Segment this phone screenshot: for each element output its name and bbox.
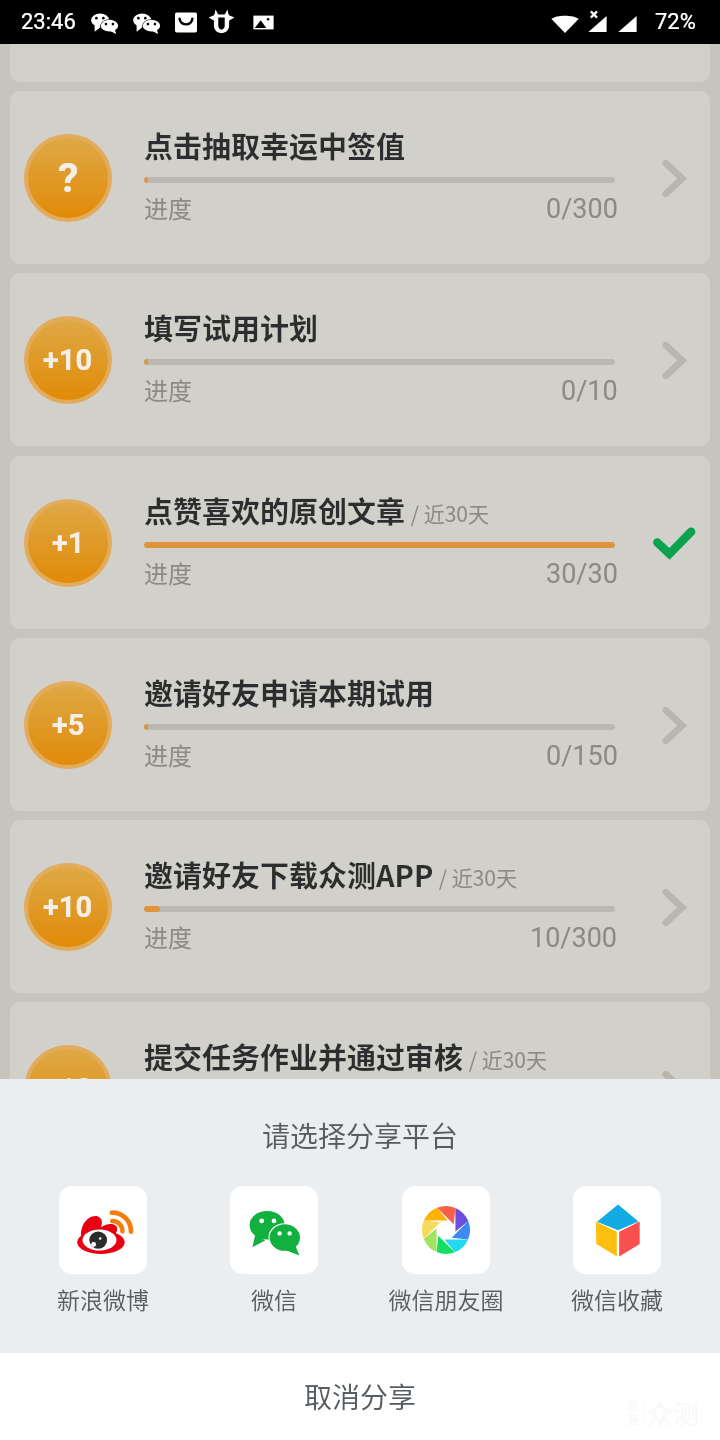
staticText: 邀请好友申请本期试用 <box>144 671 435 713</box>
button[interactable]: 微信朋友圈 <box>356 1186 536 1274</box>
button[interactable]: 微信 <box>184 1186 364 1274</box>
staticText: 0/300 <box>546 193 618 225</box>
staticText: 进度 <box>144 555 192 590</box>
staticText: +10 <box>43 343 93 377</box>
staticText: / 近30天 <box>434 862 517 892</box>
other: 查看详情 <box>645 331 703 389</box>
button[interactable]: +10 <box>10 820 710 993</box>
staticText: 72% <box>655 9 696 35</box>
other: 已完成 <box>645 514 703 572</box>
staticText: 30/30 <box>546 558 618 590</box>
staticText: +10 <box>43 1072 93 1106</box>
other: 查看详情 <box>645 149 703 207</box>
button[interactable]: +10 <box>10 1002 710 1175</box>
staticText: 微信收藏 <box>527 1282 707 1315</box>
staticText: 进度 <box>144 737 192 772</box>
staticText: 进度 <box>144 372 192 407</box>
button[interactable]: ? <box>10 91 710 264</box>
staticText: 微信 <box>184 1282 364 1315</box>
staticText: +10 <box>43 890 93 924</box>
staticText: 进度 <box>144 919 192 954</box>
other: 查看详情 <box>645 696 703 754</box>
staticText: 新浪微博 <box>13 1282 193 1315</box>
staticText: +5 <box>52 708 85 742</box>
staticText: 填写试用计划 <box>144 306 319 348</box>
button[interactable]: 新浪微博 <box>13 1186 193 1274</box>
staticText: 0/10 <box>561 375 618 407</box>
staticText: 微信朋友圈 <box>356 1282 536 1315</box>
button[interactable]: 取消分享 <box>0 1353 720 1440</box>
button[interactable]: +5 <box>10 638 710 811</box>
staticText: 10/300 <box>530 922 618 954</box>
staticText: 取消分享 <box>304 1376 417 1417</box>
staticText: 进度 <box>144 190 192 225</box>
other: 查看详情 <box>645 878 703 936</box>
staticText: 点击抽取幸运中签值 <box>144 124 406 166</box>
staticText: / 近30天 <box>406 498 489 528</box>
staticText: 0/150 <box>546 740 618 772</box>
staticText: 请选择分享平台 <box>0 1115 720 1156</box>
staticText: / 近30天 <box>464 1044 547 1074</box>
staticText: 点赞喜欢的原创文章 <box>144 489 406 531</box>
staticText: 23:46 <box>21 9 76 35</box>
staticText: ? <box>58 154 79 202</box>
staticText: +1 <box>52 526 85 560</box>
button[interactable]: +1 <box>10 456 710 629</box>
staticText: 邀请好友下载众测APP <box>144 853 434 895</box>
button[interactable]: 微信收藏 <box>527 1186 707 1274</box>
button[interactable]: +10 <box>10 273 710 446</box>
other: 查看详情 <box>645 1060 703 1118</box>
staticText: 提交任务作业并通过审核 <box>144 1035 464 1077</box>
